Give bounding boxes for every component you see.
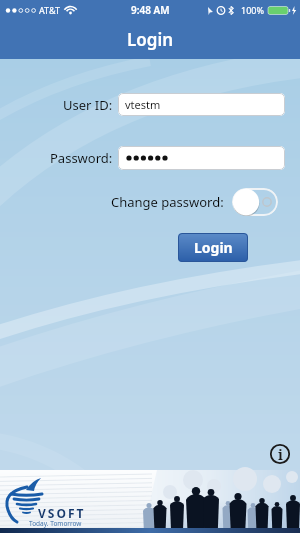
button[interactable]: Login [178,233,248,262]
staticText: Today. Tomorrow [29,519,82,528]
staticText: User ID: [63,96,113,114]
button[interactable]: vtestm [118,93,285,116]
staticText: 100% [241,4,264,16]
staticText: 9:48 AM [131,3,170,17]
button[interactable]: i [269,443,291,465]
staticText: AT&T [39,4,60,16]
staticText: vtestm [125,97,161,112]
staticText: Password: [50,149,113,167]
button[interactable] [118,146,285,170]
staticText: Login [194,238,233,257]
staticText: Login [127,28,174,51]
staticText: i [278,445,283,464]
staticText: VSOFT [38,505,86,521]
staticText: Change password: [111,193,224,211]
button[interactable] [232,188,278,216]
